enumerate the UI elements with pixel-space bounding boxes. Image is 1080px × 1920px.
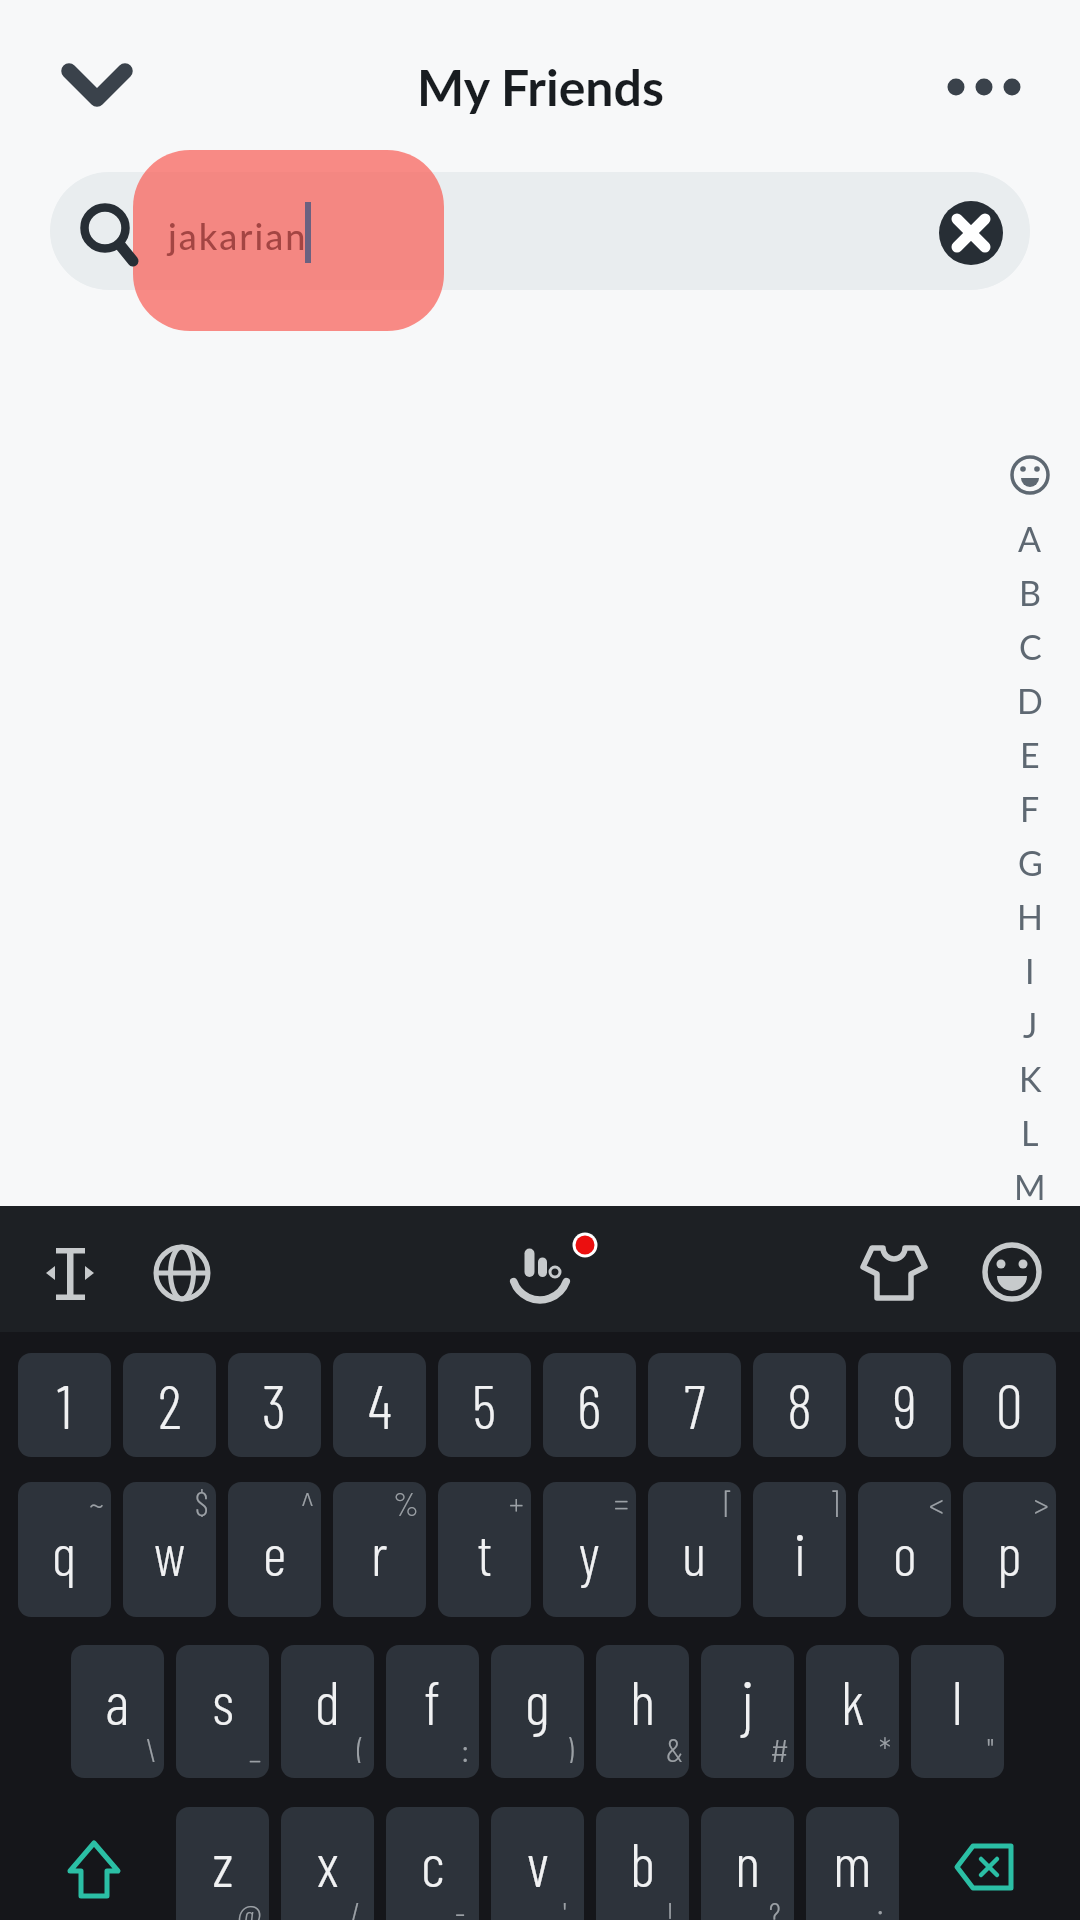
button[interactable]: [970, 1232, 1054, 1316]
button[interactable]: [50, 172, 1030, 290]
staticText: 7: [684, 1369, 706, 1441]
staticText: m: [833, 1827, 872, 1899]
staticText: ^: [301, 1483, 314, 1517]
button[interactable]: i: [753, 1482, 846, 1617]
button[interactable]: [140, 1232, 224, 1316]
button[interactable]: c: [386, 1807, 479, 1920]
button[interactable]: s: [176, 1645, 269, 1778]
staticText: 3: [262, 1369, 287, 1441]
button[interactable]: [56, 55, 138, 115]
button[interactable]: E: [1008, 732, 1052, 776]
button[interactable]: j: [701, 1645, 794, 1778]
button[interactable]: 7: [648, 1353, 741, 1457]
button[interactable]: g: [491, 1645, 584, 1778]
button[interactable]: G: [1008, 840, 1052, 884]
staticText: 1: [57, 1369, 72, 1441]
staticText: j: [742, 1665, 754, 1737]
button[interactable]: x: [281, 1807, 374, 1920]
button[interactable]: D: [1008, 678, 1052, 722]
button[interactable]: u: [648, 1482, 741, 1617]
button[interactable]: d: [281, 1645, 374, 1778]
button[interactable]: p: [963, 1482, 1056, 1617]
staticText: ~: [89, 1483, 104, 1517]
button[interactable]: [18, 1807, 164, 1920]
button[interactable]: J: [1008, 1002, 1052, 1046]
staticText: :: [877, 1893, 884, 1920]
staticText: 8: [787, 1369, 813, 1441]
button[interactable]: t: [438, 1482, 531, 1617]
button[interactable]: [939, 201, 1003, 265]
staticText: jakarian: [168, 214, 308, 257]
button[interactable]: B: [1008, 570, 1052, 614]
button[interactable]: H: [1008, 894, 1052, 938]
button[interactable]: w: [123, 1482, 216, 1617]
button[interactable]: K: [1008, 1056, 1052, 1100]
button[interactable]: A: [1008, 516, 1052, 560]
staticText: n: [735, 1827, 761, 1899]
button[interactable]: r: [333, 1482, 426, 1617]
staticText: G: [1018, 842, 1043, 883]
staticText: _: [249, 1729, 262, 1763]
staticText: t: [477, 1518, 493, 1588]
button[interactable]: [492, 1228, 588, 1318]
button[interactable]: 4: [333, 1353, 426, 1457]
staticText: B: [1019, 572, 1041, 613]
button[interactable]: v: [491, 1807, 584, 1920]
button[interactable]: 2: [123, 1353, 216, 1457]
button[interactable]: a: [71, 1645, 164, 1778]
button[interactable]: q: [18, 1482, 111, 1617]
button[interactable]: I: [1008, 948, 1052, 992]
staticText: I: [1025, 950, 1035, 991]
staticText: E: [1020, 734, 1040, 775]
staticText: a: [105, 1665, 130, 1737]
button[interactable]: f: [386, 1645, 479, 1778]
button[interactable]: y: [543, 1482, 636, 1617]
staticText: 0: [996, 1369, 1023, 1441]
button[interactable]: 6: [543, 1353, 636, 1457]
button[interactable]: b: [596, 1807, 689, 1920]
staticText: K: [1019, 1058, 1042, 1099]
button[interactable]: z: [176, 1807, 269, 1920]
button[interactable]: 0: [963, 1353, 1056, 1457]
button[interactable]: [28, 1232, 112, 1316]
staticText: +: [509, 1483, 524, 1517]
staticText: e: [263, 1518, 287, 1588]
staticText: 5: [472, 1369, 497, 1441]
button[interactable]: [936, 55, 1036, 115]
button[interactable]: 8: [753, 1353, 846, 1457]
button[interactable]: F: [1008, 786, 1052, 830]
button[interactable]: k: [806, 1645, 899, 1778]
staticText: s: [212, 1665, 234, 1737]
staticText: h: [630, 1665, 656, 1737]
staticText: z: [212, 1827, 234, 1899]
button[interactable]: m: [806, 1807, 899, 1920]
button[interactable]: h: [596, 1645, 689, 1778]
button[interactable]: e: [228, 1482, 321, 1617]
staticText: 6: [577, 1369, 602, 1441]
button[interactable]: 1: [18, 1353, 111, 1457]
button[interactable]: l: [911, 1645, 1004, 1778]
button[interactable]: L: [1008, 1110, 1052, 1154]
staticText: *: [879, 1729, 891, 1763]
button[interactable]: M: [1008, 1164, 1052, 1208]
staticText: ]: [829, 1483, 839, 1517]
button[interactable]: C: [1008, 624, 1052, 668]
staticText: l: [952, 1665, 963, 1737]
button[interactable]: [852, 1232, 936, 1316]
staticText: r: [371, 1518, 388, 1588]
staticText: u: [682, 1518, 707, 1588]
staticText: x: [317, 1827, 339, 1899]
staticText: (: [357, 1729, 364, 1763]
staticText: :: [462, 1729, 469, 1763]
staticText: M: [1014, 1166, 1046, 1207]
staticText: F: [1020, 788, 1040, 829]
button[interactable]: 9: [858, 1353, 951, 1457]
button[interactable]: n: [701, 1807, 794, 1920]
staticText: <: [929, 1483, 944, 1517]
staticText: p: [997, 1518, 1022, 1588]
button[interactable]: 5: [438, 1353, 531, 1457]
button[interactable]: 3: [228, 1353, 321, 1457]
staticText: f: [424, 1665, 441, 1737]
button[interactable]: o: [858, 1482, 951, 1617]
button[interactable]: [916, 1807, 1062, 1920]
